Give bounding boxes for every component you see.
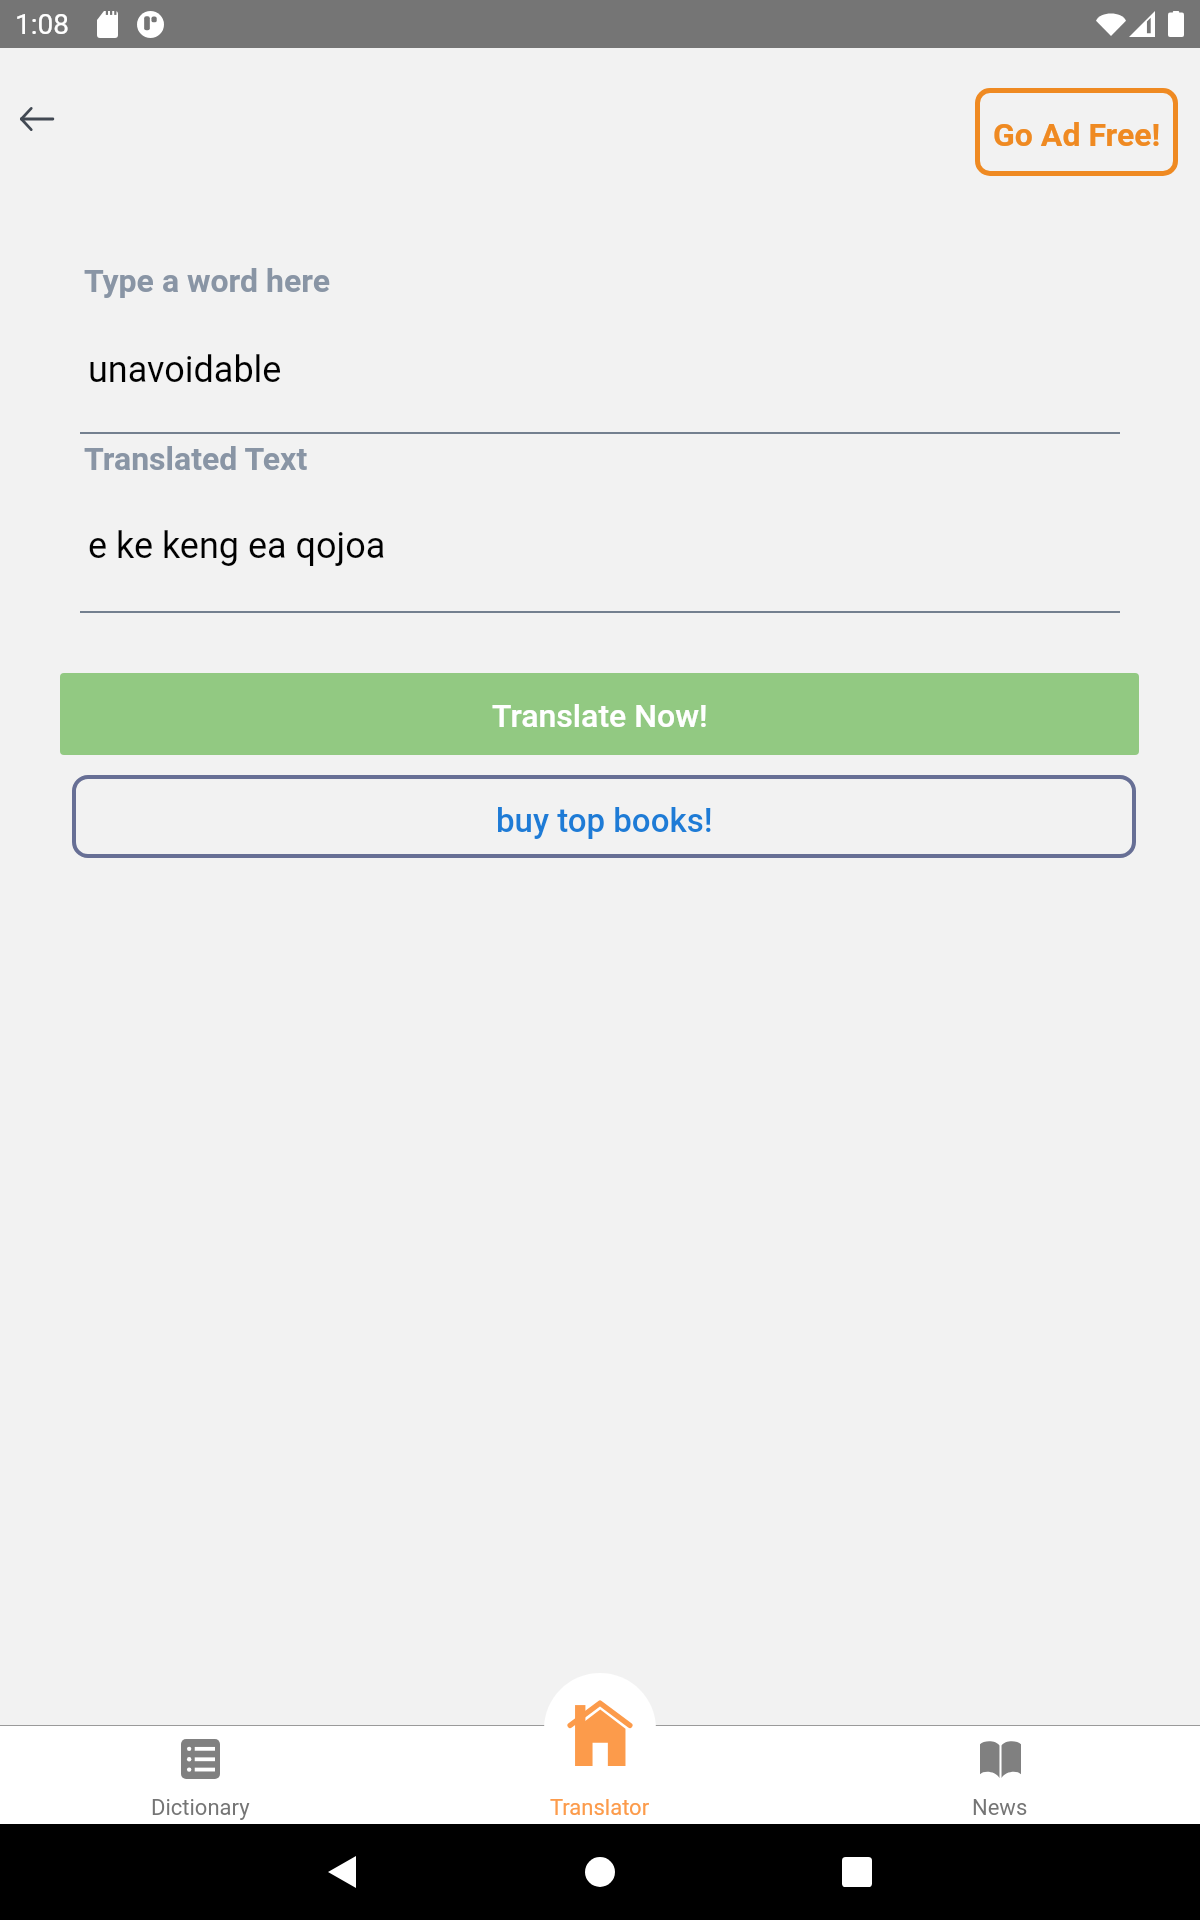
staticText: buy top books! bbox=[496, 801, 713, 840]
button[interactable]: Dictionary bbox=[0, 1673, 400, 1824]
button[interactable]: Back bbox=[13, 95, 61, 143]
staticText: News bbox=[972, 1795, 1028, 1821]
button[interactable]: Home bbox=[560, 1832, 640, 1912]
button[interactable]: Back bbox=[302, 1832, 382, 1912]
button[interactable]: News bbox=[800, 1673, 1200, 1824]
staticText: Translate Now! bbox=[492, 697, 708, 735]
staticText: Go Ad Free! bbox=[993, 116, 1161, 154]
staticText: unavoidable bbox=[88, 349, 282, 391]
button[interactable]: Translator bbox=[400, 1673, 800, 1824]
staticText: Translator bbox=[550, 1795, 650, 1821]
button[interactable]: buy top books! bbox=[72, 775, 1136, 858]
staticText: e ke keng ea qojoa bbox=[88, 525, 386, 567]
button[interactable]: Go Ad Free! bbox=[975, 88, 1178, 176]
button[interactable]: Recent apps bbox=[817, 1832, 897, 1912]
staticText: Translated Text bbox=[84, 440, 308, 478]
staticText: Type a word here bbox=[84, 262, 330, 300]
button[interactable]: Translate Now! bbox=[60, 673, 1139, 755]
staticText: Dictionary bbox=[151, 1795, 250, 1821]
staticText: 1:08 bbox=[15, 8, 69, 41]
